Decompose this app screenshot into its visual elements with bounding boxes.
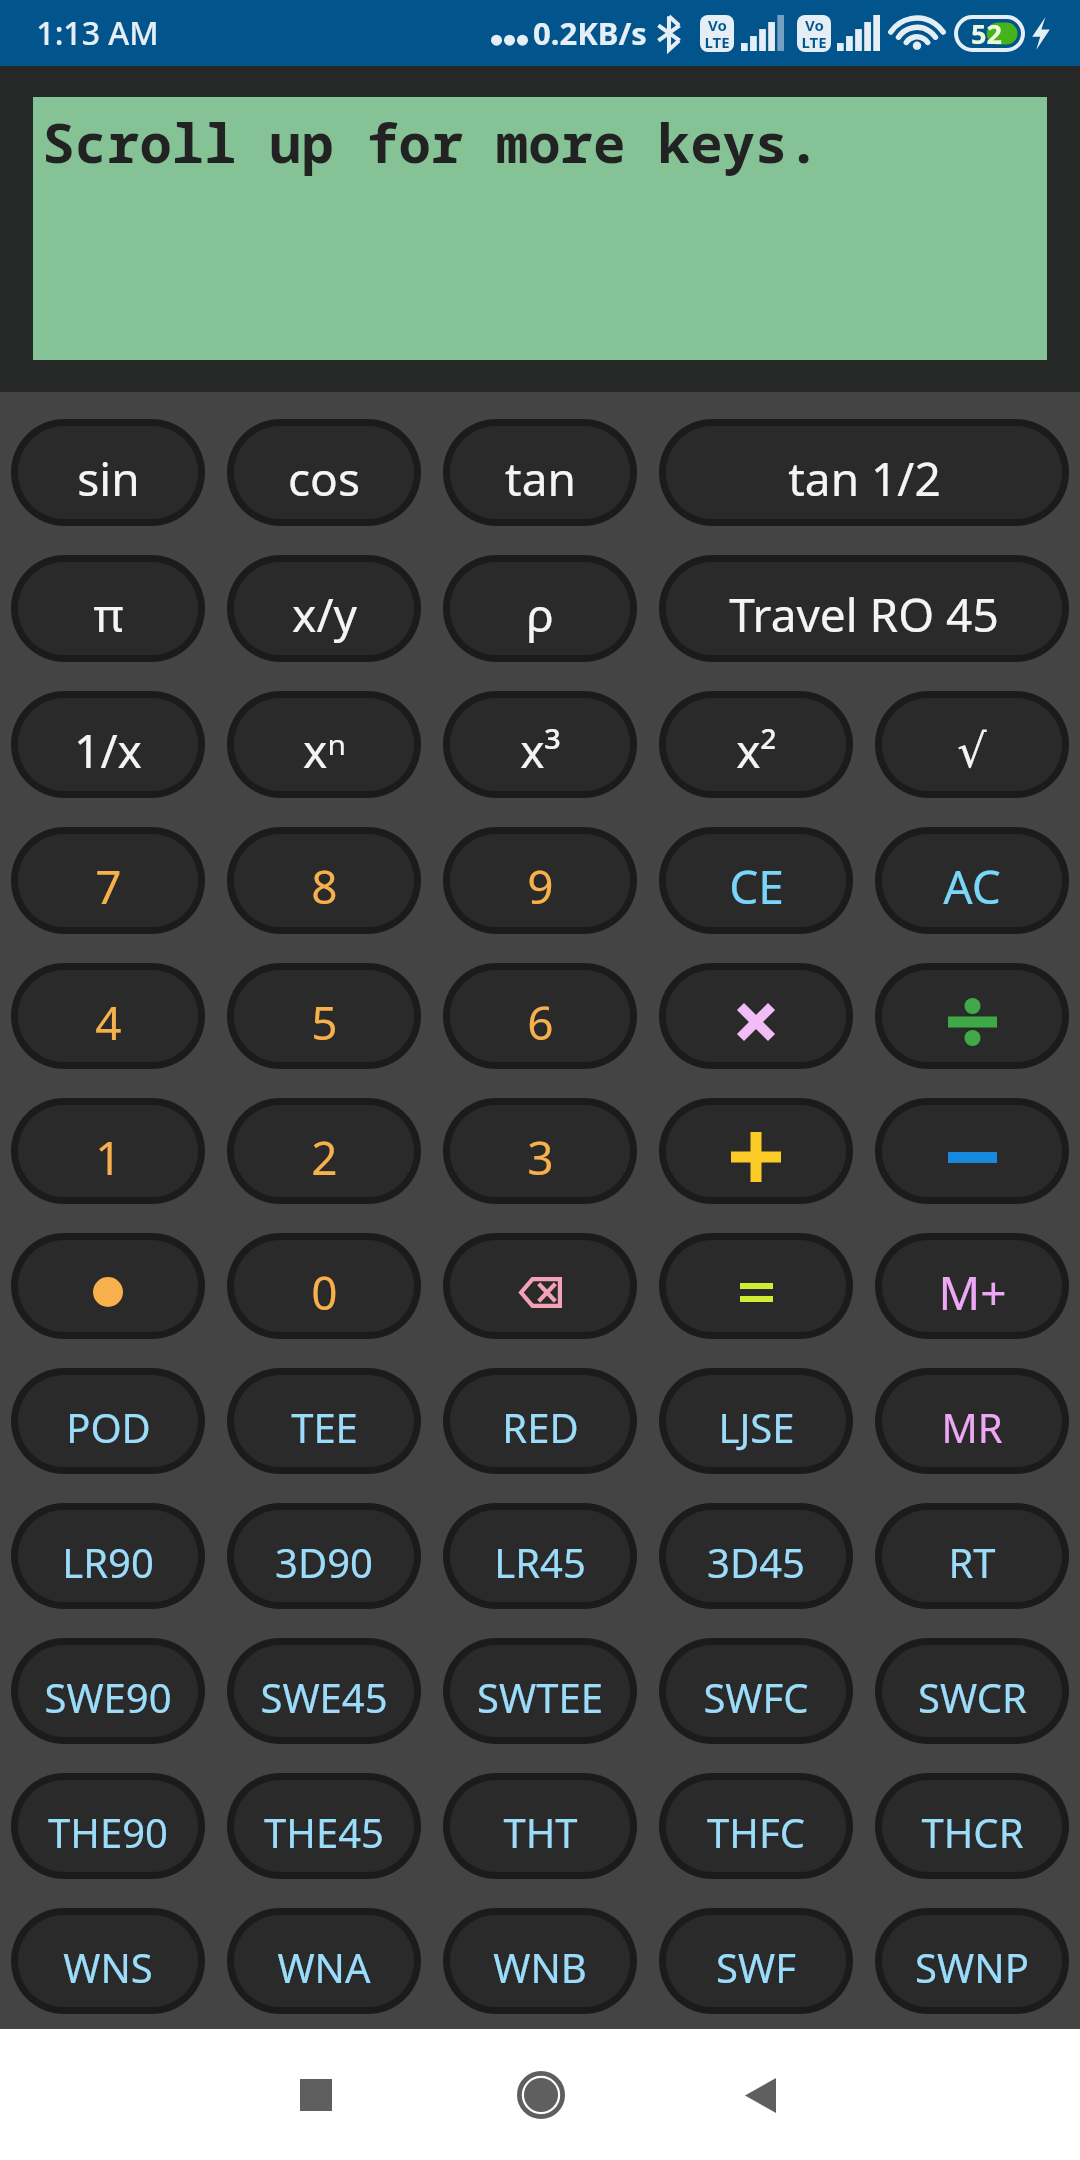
staticText: CE (729, 855, 784, 918)
other: Equals (740, 1283, 773, 1302)
staticText: 52 (971, 15, 1002, 52)
button[interactable]: Equals (666, 1240, 846, 1332)
staticText: SWE45 (260, 1670, 388, 1724)
button[interactable]: Back (720, 2055, 800, 2135)
staticText: tan (505, 447, 576, 510)
staticText: SWTEE (477, 1670, 603, 1724)
button[interactable]: WNA (234, 1915, 414, 2007)
button[interactable]: 9 (450, 834, 630, 927)
staticText: 3D45 (707, 1535, 805, 1589)
staticText: sin (77, 447, 140, 510)
staticText: Vo (708, 15, 727, 35)
staticText: 2 (311, 1126, 338, 1189)
staticText: tan 1/2 (788, 447, 941, 510)
button[interactable]: SWTEE (450, 1645, 630, 1737)
button[interactable]: Multiply (666, 970, 846, 1062)
staticText: Travel RO 45 (729, 583, 999, 646)
staticText: LTE (704, 32, 730, 52)
button[interactable]: LR90 (18, 1510, 198, 1602)
button[interactable]: 3 (450, 1105, 630, 1197)
button[interactable]: WNB (450, 1915, 630, 2007)
button[interactable]: Backspace (450, 1240, 630, 1332)
button[interactable]: 5 (234, 970, 414, 1062)
button[interactable]: √ (882, 698, 1062, 791)
button[interactable]: 1 (18, 1105, 198, 1197)
staticText: SWCR (918, 1670, 1027, 1724)
button[interactable]: LR45 (450, 1510, 630, 1602)
button[interactable]: SWE45 (234, 1645, 414, 1737)
button[interactable]: M+ (882, 1240, 1062, 1332)
staticText: WNS (63, 1940, 153, 1994)
button[interactable]: 2 (234, 1105, 414, 1197)
staticText: LR90 (62, 1535, 154, 1589)
button[interactable]: RED (450, 1375, 630, 1467)
staticText: LTE (801, 32, 827, 52)
button[interactable]: 1/x (18, 698, 198, 791)
staticText: √ (957, 724, 987, 778)
staticText: THCR (921, 1805, 1024, 1859)
button[interactable]: 0 (234, 1240, 414, 1332)
button[interactable]: 7 (18, 834, 198, 927)
button[interactable]: 3D90 (234, 1510, 414, 1602)
staticText: 0.2KB/s (533, 12, 647, 54)
button[interactable]: 4 (18, 970, 198, 1062)
other: Multiply (739, 1005, 773, 1039)
staticText: M+ (938, 1261, 1007, 1324)
button[interactable]: POD (18, 1375, 198, 1467)
staticText: 3 (527, 1126, 554, 1189)
button[interactable]: Travel RO 45 (666, 562, 1062, 655)
button[interactable]: THE45 (234, 1780, 414, 1872)
button[interactable]: Divide (882, 970, 1062, 1062)
button[interactable]: THE90 (18, 1780, 198, 1872)
button[interactable]: 6 (450, 970, 630, 1062)
button[interactable]: π (18, 562, 198, 655)
button[interactable]: x/y (234, 562, 414, 655)
staticText: Scroll up for more keys. (42, 105, 820, 179)
button[interactable]: Decimal point (18, 1240, 198, 1332)
staticText: RED (502, 1400, 579, 1454)
staticText: LJSE (718, 1400, 795, 1454)
button[interactable]: SWF (666, 1915, 846, 2007)
staticText: cos (288, 447, 360, 510)
button[interactable]: 8 (234, 834, 414, 927)
button[interactable]: Recents (276, 2055, 356, 2135)
button[interactable]: AC (882, 834, 1062, 927)
button[interactable]: Home (501, 2055, 581, 2135)
staticText: 1/x (74, 719, 142, 782)
staticText: Vo (805, 15, 824, 35)
button[interactable]: x³ (450, 698, 630, 791)
button[interactable]: ρ (450, 562, 630, 655)
button[interactable]: RT (882, 1510, 1062, 1602)
button[interactable]: cos (234, 426, 414, 519)
button[interactable]: SWFC (666, 1645, 846, 1737)
staticText: 6 (527, 991, 554, 1054)
button[interactable]: SWE90 (18, 1645, 198, 1737)
button[interactable]: tan (450, 426, 630, 519)
staticText: π (93, 583, 124, 646)
button[interactable]: tan 1/2 (666, 426, 1062, 519)
staticText: 5 (311, 991, 338, 1054)
staticText: x² (736, 719, 777, 782)
button[interactable]: WNS (18, 1915, 198, 2007)
staticText: AC (943, 855, 1001, 918)
button[interactable]: SWCR (882, 1645, 1062, 1737)
button[interactable]: CE (666, 834, 846, 927)
button[interactable]: Minus (882, 1105, 1062, 1197)
button[interactable]: THFC (666, 1780, 846, 1872)
button[interactable]: x² (666, 698, 846, 791)
staticText: 1 (95, 1126, 122, 1189)
button[interactable]: sin (18, 426, 198, 519)
button[interactable]: xⁿ (234, 698, 414, 791)
button[interactable]: SWNP (882, 1915, 1062, 2007)
staticText: TEE (291, 1400, 358, 1454)
staticText: THT (503, 1805, 578, 1859)
button[interactable]: TEE (234, 1375, 414, 1467)
button[interactable]: THCR (882, 1780, 1062, 1872)
button[interactable]: 3D45 (666, 1510, 846, 1602)
button[interactable]: LJSE (666, 1375, 846, 1467)
button[interactable]: THT (450, 1780, 630, 1872)
staticText: 7 (95, 855, 122, 918)
button[interactable]: Plus (666, 1105, 846, 1197)
button[interactable]: MR (882, 1375, 1062, 1467)
